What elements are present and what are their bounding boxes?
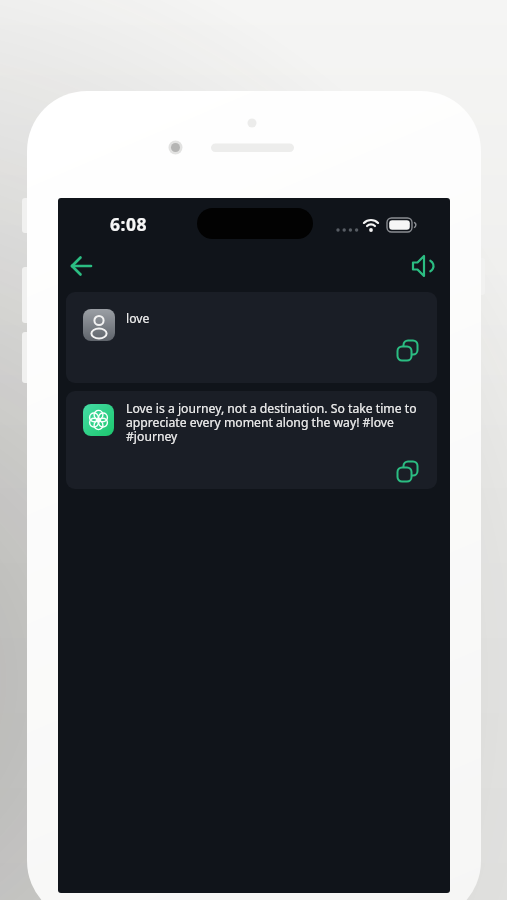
- button[interactable]: [396, 339, 420, 363]
- staticText: 6:08: [110, 212, 147, 236]
- button[interactable]: [408, 250, 440, 282]
- staticText: love: [126, 310, 150, 327]
- button[interactable]: [64, 250, 98, 282]
- button[interactable]: Love is a journey, not a destination. So…: [66, 391, 437, 489]
- button[interactable]: [396, 460, 420, 484]
- staticText: Love is a journey, not a destination. So…: [126, 400, 417, 445]
- button[interactable]: love: [66, 292, 437, 383]
